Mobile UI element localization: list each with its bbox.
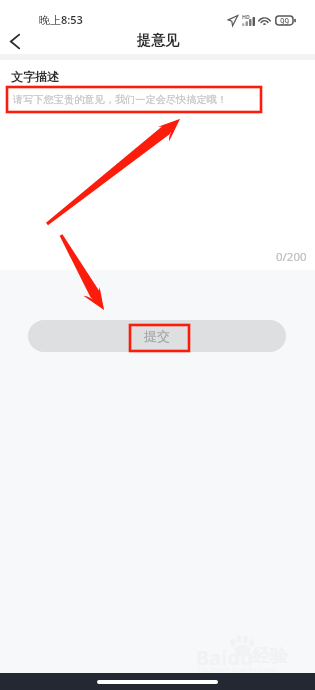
staticText: 提交 bbox=[144, 328, 170, 344]
staticText: 0/200 bbox=[276, 249, 307, 265]
staticText: HD bbox=[242, 13, 250, 20]
staticText: 99 bbox=[280, 16, 290, 27]
staticText: 晚上8:53 bbox=[39, 12, 83, 27]
staticText: jingyan.baidu.com bbox=[198, 663, 278, 675]
button[interactable]: 提交 bbox=[28, 320, 286, 352]
button[interactable]: 请写下您宝贵的意见，我们一定会尽快搞定哦！ bbox=[6, 86, 296, 244]
staticText: 文字描述 bbox=[11, 69, 59, 84]
staticText: 提意见 bbox=[137, 32, 179, 50]
staticText: 请写下您宝贵的意见，我们一定会尽快搞定哦！ bbox=[13, 93, 227, 106]
button[interactable]: Back bbox=[0, 28, 30, 54]
